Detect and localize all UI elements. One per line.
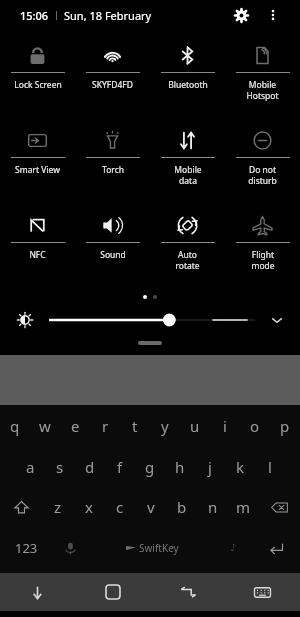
button[interactable]: b [166,487,197,527]
staticText: s [56,457,64,477]
button[interactable]: x [73,487,104,527]
button[interactable] [50,303,254,337]
button[interactable]: o [240,405,270,447]
staticText: Sun, 18 February [64,8,152,23]
staticText: 15:06 [20,8,49,23]
staticText: Sound [100,249,126,261]
staticText: y [161,416,169,436]
staticText: t [132,416,138,436]
staticText: g [145,457,155,477]
staticText: o [250,416,260,436]
button[interactable]: n [197,487,228,527]
button[interactable]: Brightness [0,303,50,337]
staticText: x [85,497,93,517]
button[interactable]: Expand [254,303,300,337]
staticText: f [117,457,123,477]
button[interactable]: Bluetooth [150,34,225,119]
staticText: u [190,416,200,436]
button[interactable]: Lock Screen [0,34,75,119]
staticText: z [54,497,62,517]
button[interactable]: Auto rotate [150,204,225,289]
button[interactable]: c [104,487,135,527]
button[interactable]: g [135,447,165,487]
button[interactable]: w [30,405,60,447]
button[interactable]: SKYFD4FD [75,34,150,119]
staticText: j [208,457,212,477]
button[interactable]: Home [75,573,150,611]
staticText: c [116,497,124,517]
staticText: ♪ [230,542,237,554]
button[interactable]: More options [260,2,286,28]
staticText: Auto rotate [175,249,200,271]
staticText: a [26,457,35,477]
staticText: k [236,457,245,477]
button[interactable]: Sound [75,204,150,289]
button[interactable]: Voice input [52,527,89,569]
button[interactable]: Torch [75,119,150,204]
button[interactable]: u [180,405,210,447]
button[interactable]: y [150,405,180,447]
button[interactable]: Mobile Hotspot [225,34,300,119]
button[interactable]: SwiftKey [89,527,215,569]
staticText: m [236,497,251,517]
button[interactable]: s [45,447,75,487]
staticText: SwiftKey [139,541,179,555]
staticText: h [175,457,185,477]
button[interactable]: t [120,405,150,447]
staticText: SKYFD4FD [92,79,133,91]
staticText: d [85,457,95,477]
button[interactable]: Enter [252,527,300,569]
staticText: Mobile data [174,164,202,186]
staticText: Mobile Hotspot [246,79,279,101]
staticText: Lock Screen [14,79,62,91]
staticText: i [223,416,227,436]
button[interactable]: Recents [150,573,225,611]
button[interactable]: r [90,405,120,447]
staticText: Bluetooth [168,79,208,91]
staticText: Torch [102,164,124,176]
button[interactable]: 123 [0,527,52,569]
button[interactable]: z [42,487,73,527]
button[interactable]: i [210,405,240,447]
button[interactable]: k [225,447,255,487]
button[interactable]: h [165,447,195,487]
button[interactable]: v [135,487,166,527]
button[interactable]: e [60,405,90,447]
staticText: Smart View [15,164,60,176]
staticText: n [208,497,218,517]
button[interactable]: Smart View [0,119,75,204]
button[interactable]: q [0,405,30,447]
button[interactable]: m [228,487,259,527]
button[interactable]: Mobile data [150,119,225,204]
button[interactable] [138,341,162,345]
button[interactable]: Switch keyboard [225,573,300,611]
button[interactable]: a [15,447,45,487]
button[interactable]: p [270,405,300,447]
staticText: Flight mode [251,249,275,271]
button[interactable]: Flight mode [225,204,300,289]
staticText: e [71,416,80,436]
button[interactable]: NFC [0,204,75,289]
staticText: w [39,416,51,436]
button[interactable]: f [105,447,135,487]
staticText: q [10,416,20,436]
staticText: 123 [15,539,38,557]
button[interactable]: Emoji [215,527,252,569]
button[interactable]: Settings [228,2,254,28]
button[interactable]: d [75,447,105,487]
button[interactable]: j [195,447,225,487]
staticText: v [147,497,155,517]
staticText: r [102,416,109,436]
staticText: p [280,416,290,436]
staticText: Do not disturb [248,164,277,186]
staticText: l [268,457,272,477]
button[interactable]: Hide keyboard [0,573,75,611]
button[interactable]: Backspace [259,487,300,527]
button[interactable]: Shift [0,487,42,527]
staticText: NFC [29,249,46,261]
button[interactable]: l [255,447,285,487]
button[interactable]: Do not disturb [225,119,300,204]
staticText: b [177,497,187,517]
